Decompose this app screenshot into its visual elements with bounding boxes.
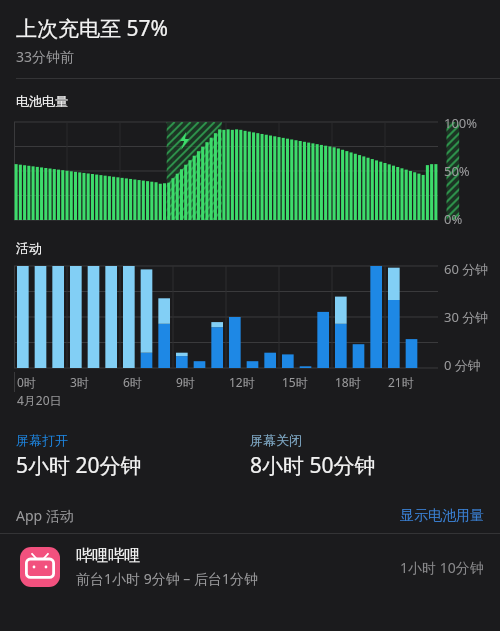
staticText: 3时: [70, 374, 89, 390]
staticText: 9时: [176, 374, 195, 390]
button[interactable]: 哔哩哔哩: [0, 534, 500, 600]
staticText: 50%: [444, 162, 470, 178]
staticText: 15时: [282, 374, 308, 390]
staticText: 活动: [16, 240, 42, 256]
staticText: 21时: [388, 374, 414, 390]
staticText: 0%: [444, 210, 463, 226]
staticText: 33分钟前: [16, 47, 75, 66]
staticText: 6时: [123, 374, 142, 390]
button[interactable]: 显示电池用量: [400, 507, 484, 525]
staticText: 电池电量: [16, 93, 68, 109]
staticText: 显示电池用量: [400, 507, 484, 525]
staticText: 18时: [335, 374, 361, 390]
staticText: 前台1小时 9分钟 – 后台1分钟: [76, 569, 258, 588]
staticText: 屏幕打开: [16, 432, 68, 448]
staticText: 8小时 50分钟: [250, 451, 376, 480]
staticText: 0 分钟: [444, 356, 481, 372]
staticText: 哔哩哔哩: [76, 546, 140, 566]
staticText: 屏幕关闭: [250, 432, 302, 448]
staticText: 60 分钟: [444, 260, 489, 276]
staticText: 100%: [444, 114, 478, 130]
staticText: 4月20日: [17, 392, 62, 408]
staticText: 上次充电至 57%: [16, 14, 168, 43]
staticText: 30 分钟: [444, 308, 489, 324]
staticText: 0时: [17, 374, 36, 390]
staticText: 5小时 20分钟: [16, 451, 142, 480]
staticText: 1小时 10分钟: [400, 558, 484, 577]
staticText: 12时: [229, 374, 255, 390]
staticText: App 活动: [16, 506, 74, 525]
